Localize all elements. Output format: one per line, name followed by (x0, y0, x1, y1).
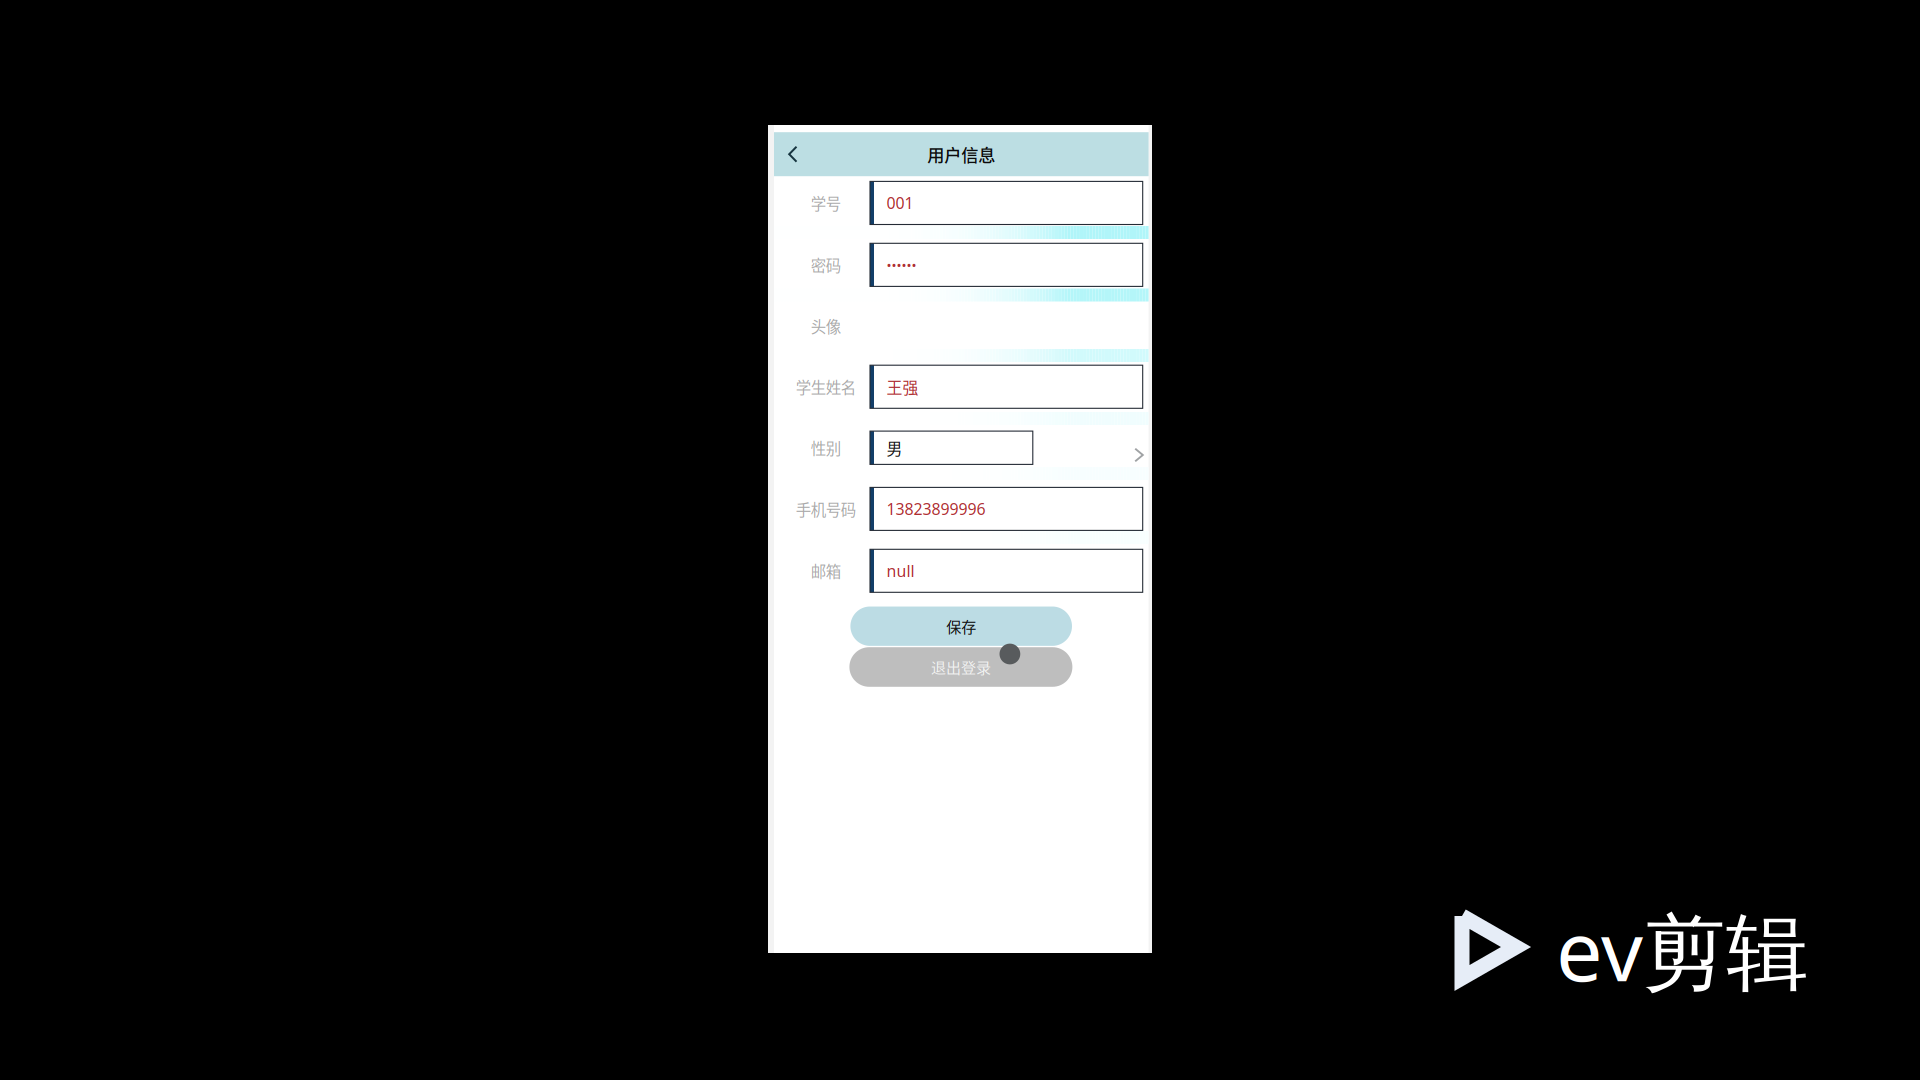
staticText: 邮箱 (811, 560, 841, 582)
staticText: •••••• (886, 256, 916, 274)
button[interactable]: 男 (870, 431, 1033, 464)
staticText: 学号 (811, 192, 841, 214)
staticText: 男 (886, 436, 902, 459)
staticText: 手机号码 (796, 498, 856, 520)
button[interactable]: Choose gender (1126, 440, 1152, 470)
staticText: 13823899996 (886, 498, 985, 520)
staticText: 性别 (811, 437, 841, 459)
staticText: 保存 (946, 615, 976, 637)
staticText: 用户信息 (927, 142, 995, 167)
staticText: 密码 (811, 254, 841, 276)
staticText: 学生姓名 (796, 376, 856, 398)
staticText: 头像 (811, 315, 841, 337)
staticText: 王强 (886, 375, 918, 398)
staticText: 001 (886, 192, 913, 214)
staticText: ev剪辑 (1556, 893, 1809, 1006)
staticText: null (886, 560, 914, 582)
staticText: 退出登录 (931, 656, 991, 678)
button[interactable]: Back (774, 132, 828, 176)
button[interactable]: 保存 (850, 606, 1072, 646)
button[interactable]: 退出登录 (849, 647, 1072, 687)
